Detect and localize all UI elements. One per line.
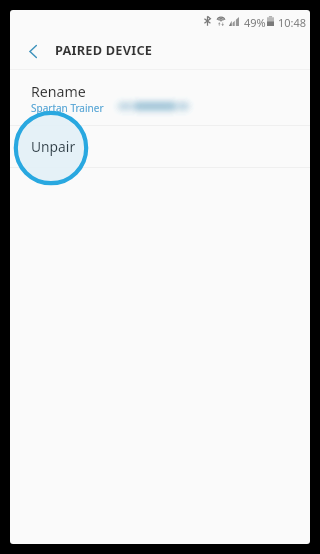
staticText: 10:48 [278,15,307,30]
staticText: PAIRED DEVICE [55,41,153,58]
staticText: Unpair [31,137,76,156]
staticText: 49% [244,15,266,30]
button[interactable]: Back [14,34,52,69]
button[interactable]: Unpair [10,126,310,167]
staticText: Rename [31,82,86,101]
staticText: Spartan Trainer [31,101,104,115]
button[interactable]: Rename [10,70,310,125]
